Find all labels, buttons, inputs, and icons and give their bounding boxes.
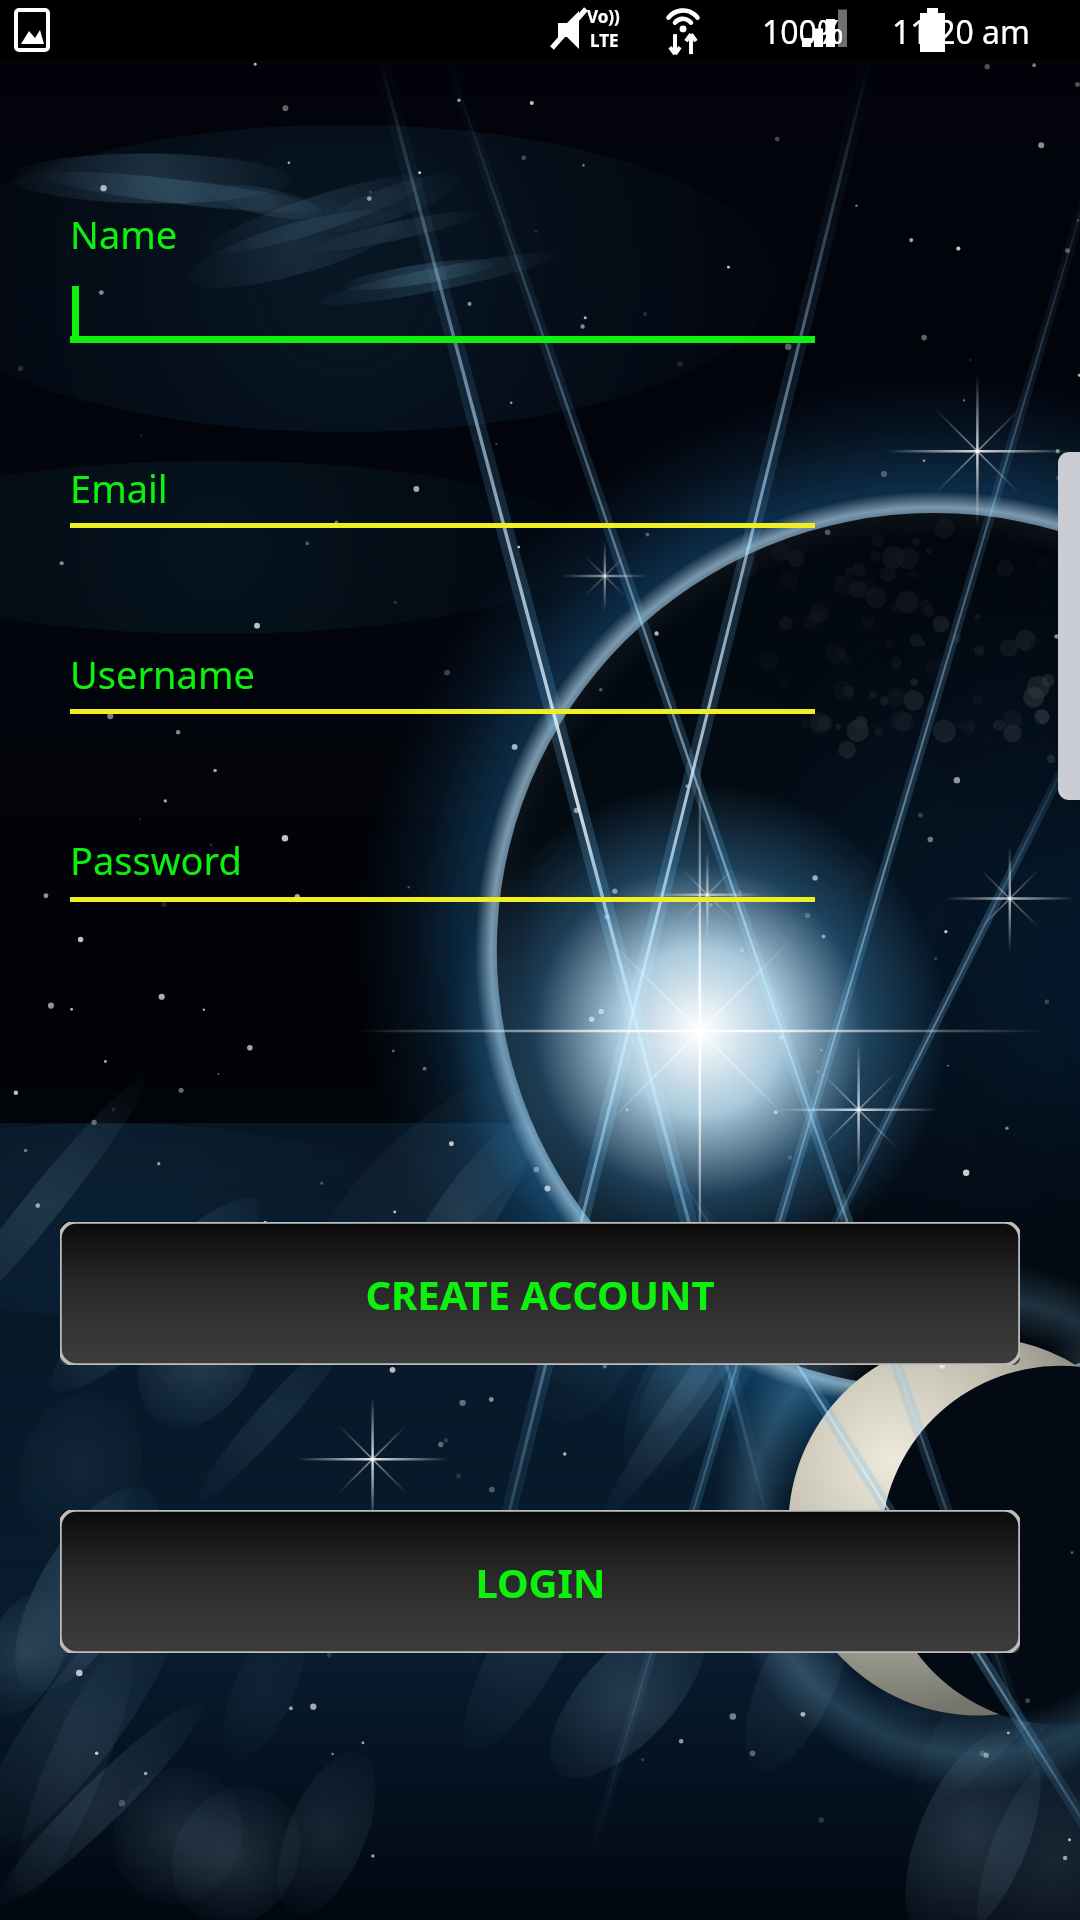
button[interactable]: LOGIN — [60, 1510, 1020, 1653]
staticText: Name — [70, 208, 178, 260]
button[interactable]: Email — [70, 462, 815, 524]
staticText: 11:20 am — [892, 10, 1030, 54]
button[interactable]: Username — [70, 648, 815, 710]
staticText: CREATE ACCOUNT — [365, 1267, 715, 1321]
staticText: Username — [70, 648, 255, 700]
staticText: LOGIN — [475, 1555, 606, 1609]
button[interactable]: Password — [70, 834, 815, 896]
staticText: Password — [70, 834, 242, 886]
staticText: Vo)) — [587, 5, 620, 28]
other: Scroll position — [1058, 452, 1080, 800]
button[interactable]: Name — [70, 208, 815, 344]
button[interactable]: CREATE ACCOUNT — [60, 1222, 1020, 1365]
staticText: 100% — [762, 10, 844, 54]
staticText: Email — [70, 462, 168, 514]
staticText: LTE — [590, 29, 619, 52]
